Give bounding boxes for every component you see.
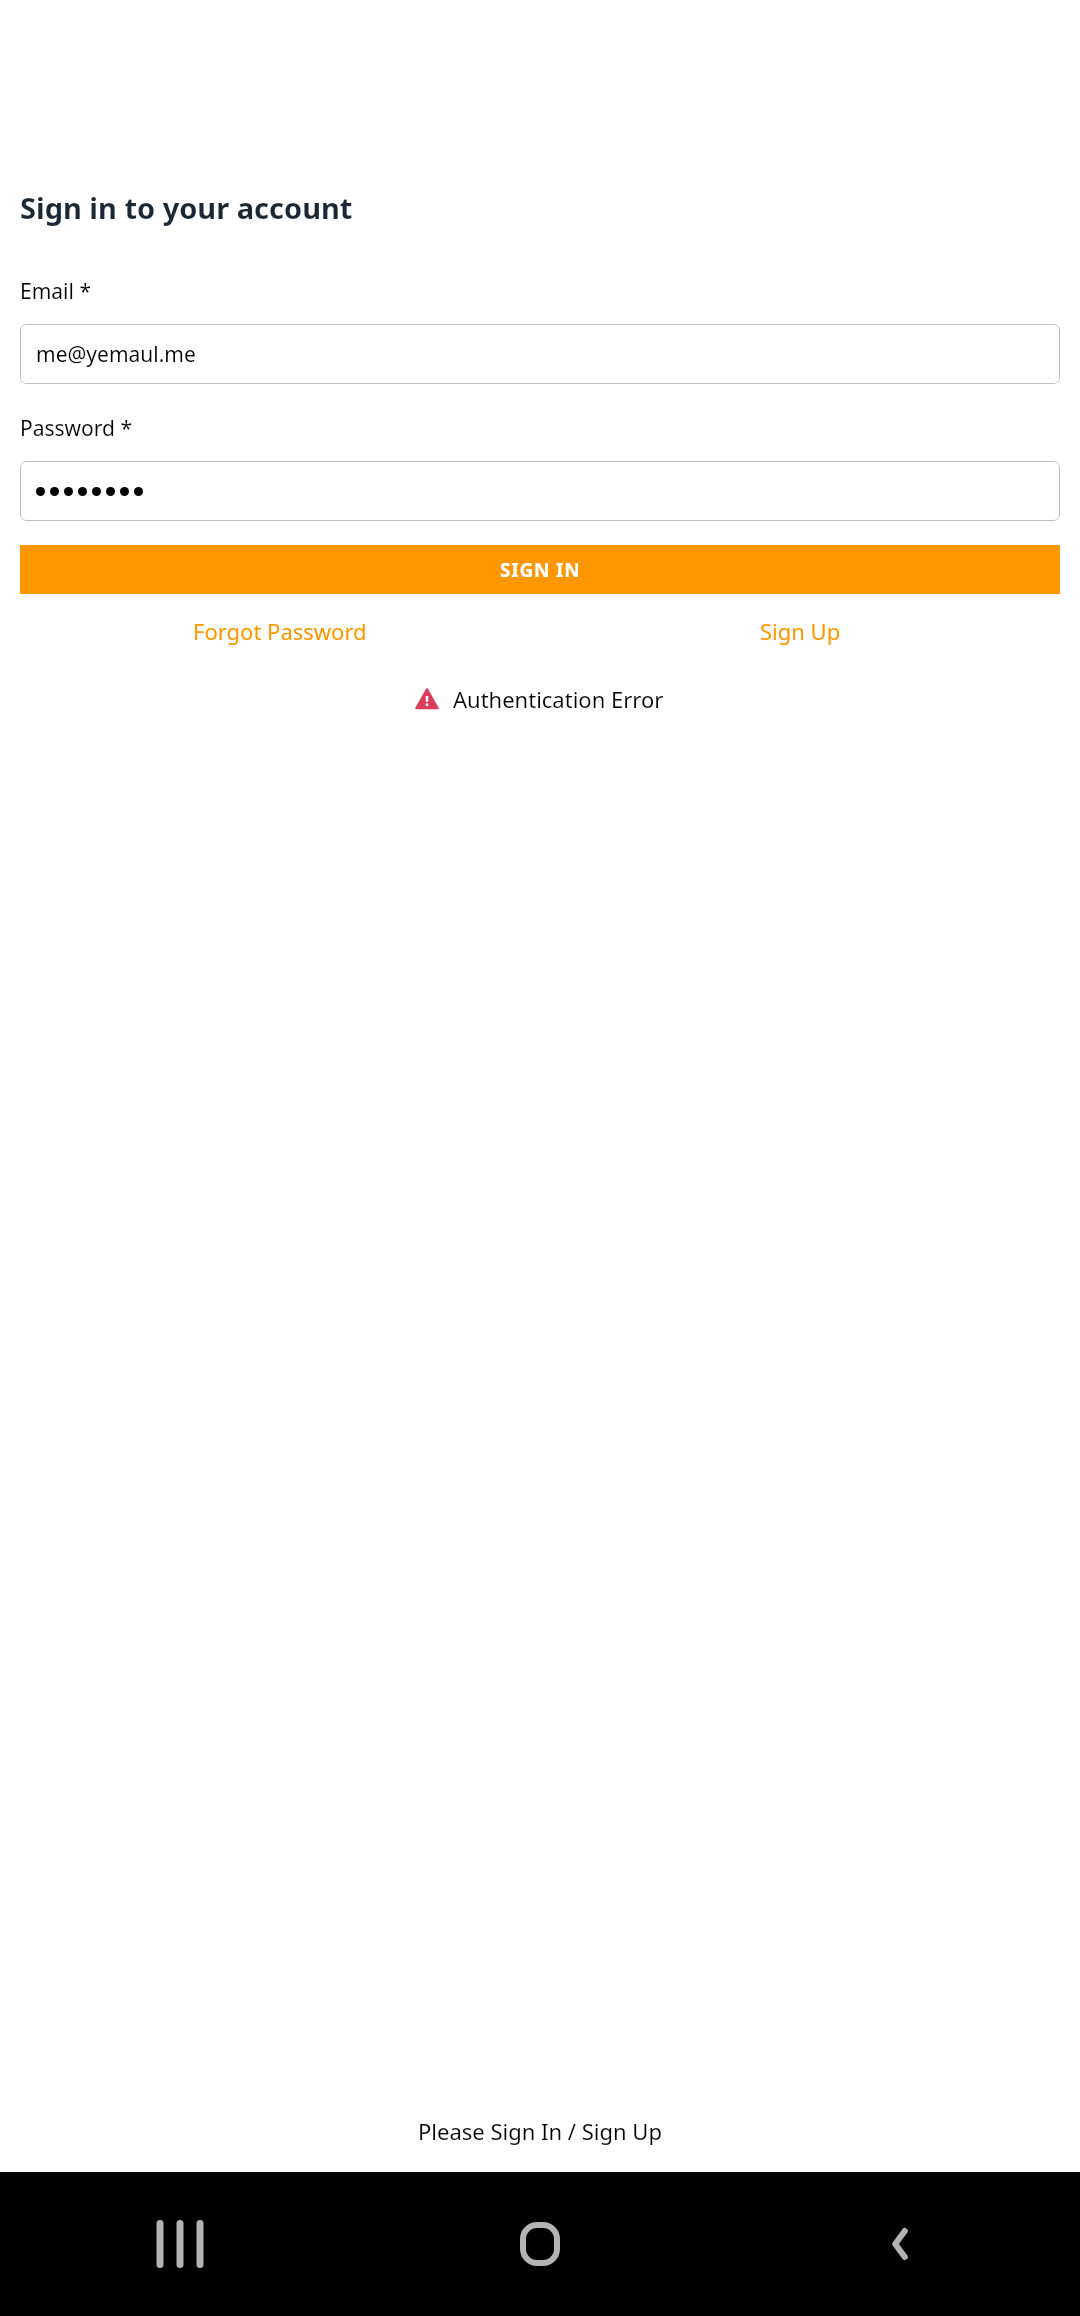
button[interactable] xyxy=(20,461,1060,521)
button[interactable]: SIGN IN xyxy=(20,545,1060,594)
staticText: Password * xyxy=(20,414,133,443)
other: Error xyxy=(416,688,438,710)
button[interactable]: Forgot Password xyxy=(20,616,540,646)
staticText: Sign in to your account xyxy=(20,188,353,227)
staticText: Email * xyxy=(20,277,91,306)
button[interactable]: Sign Up xyxy=(540,616,1060,646)
button[interactable]: Recent apps xyxy=(0,2172,360,2316)
staticText: SIGN IN xyxy=(500,557,581,583)
staticText: me@yemaul.me xyxy=(36,340,196,369)
button[interactable]: me@yemaul.me xyxy=(20,324,1060,384)
staticText: Forgot Password xyxy=(193,616,367,646)
button[interactable]: Home xyxy=(360,2172,720,2316)
staticText: Please Sign In / Sign Up xyxy=(0,2116,1080,2146)
staticText: Sign Up xyxy=(760,616,841,646)
button[interactable]: Back xyxy=(720,2172,1080,2316)
staticText: Authentication Error xyxy=(453,684,664,714)
